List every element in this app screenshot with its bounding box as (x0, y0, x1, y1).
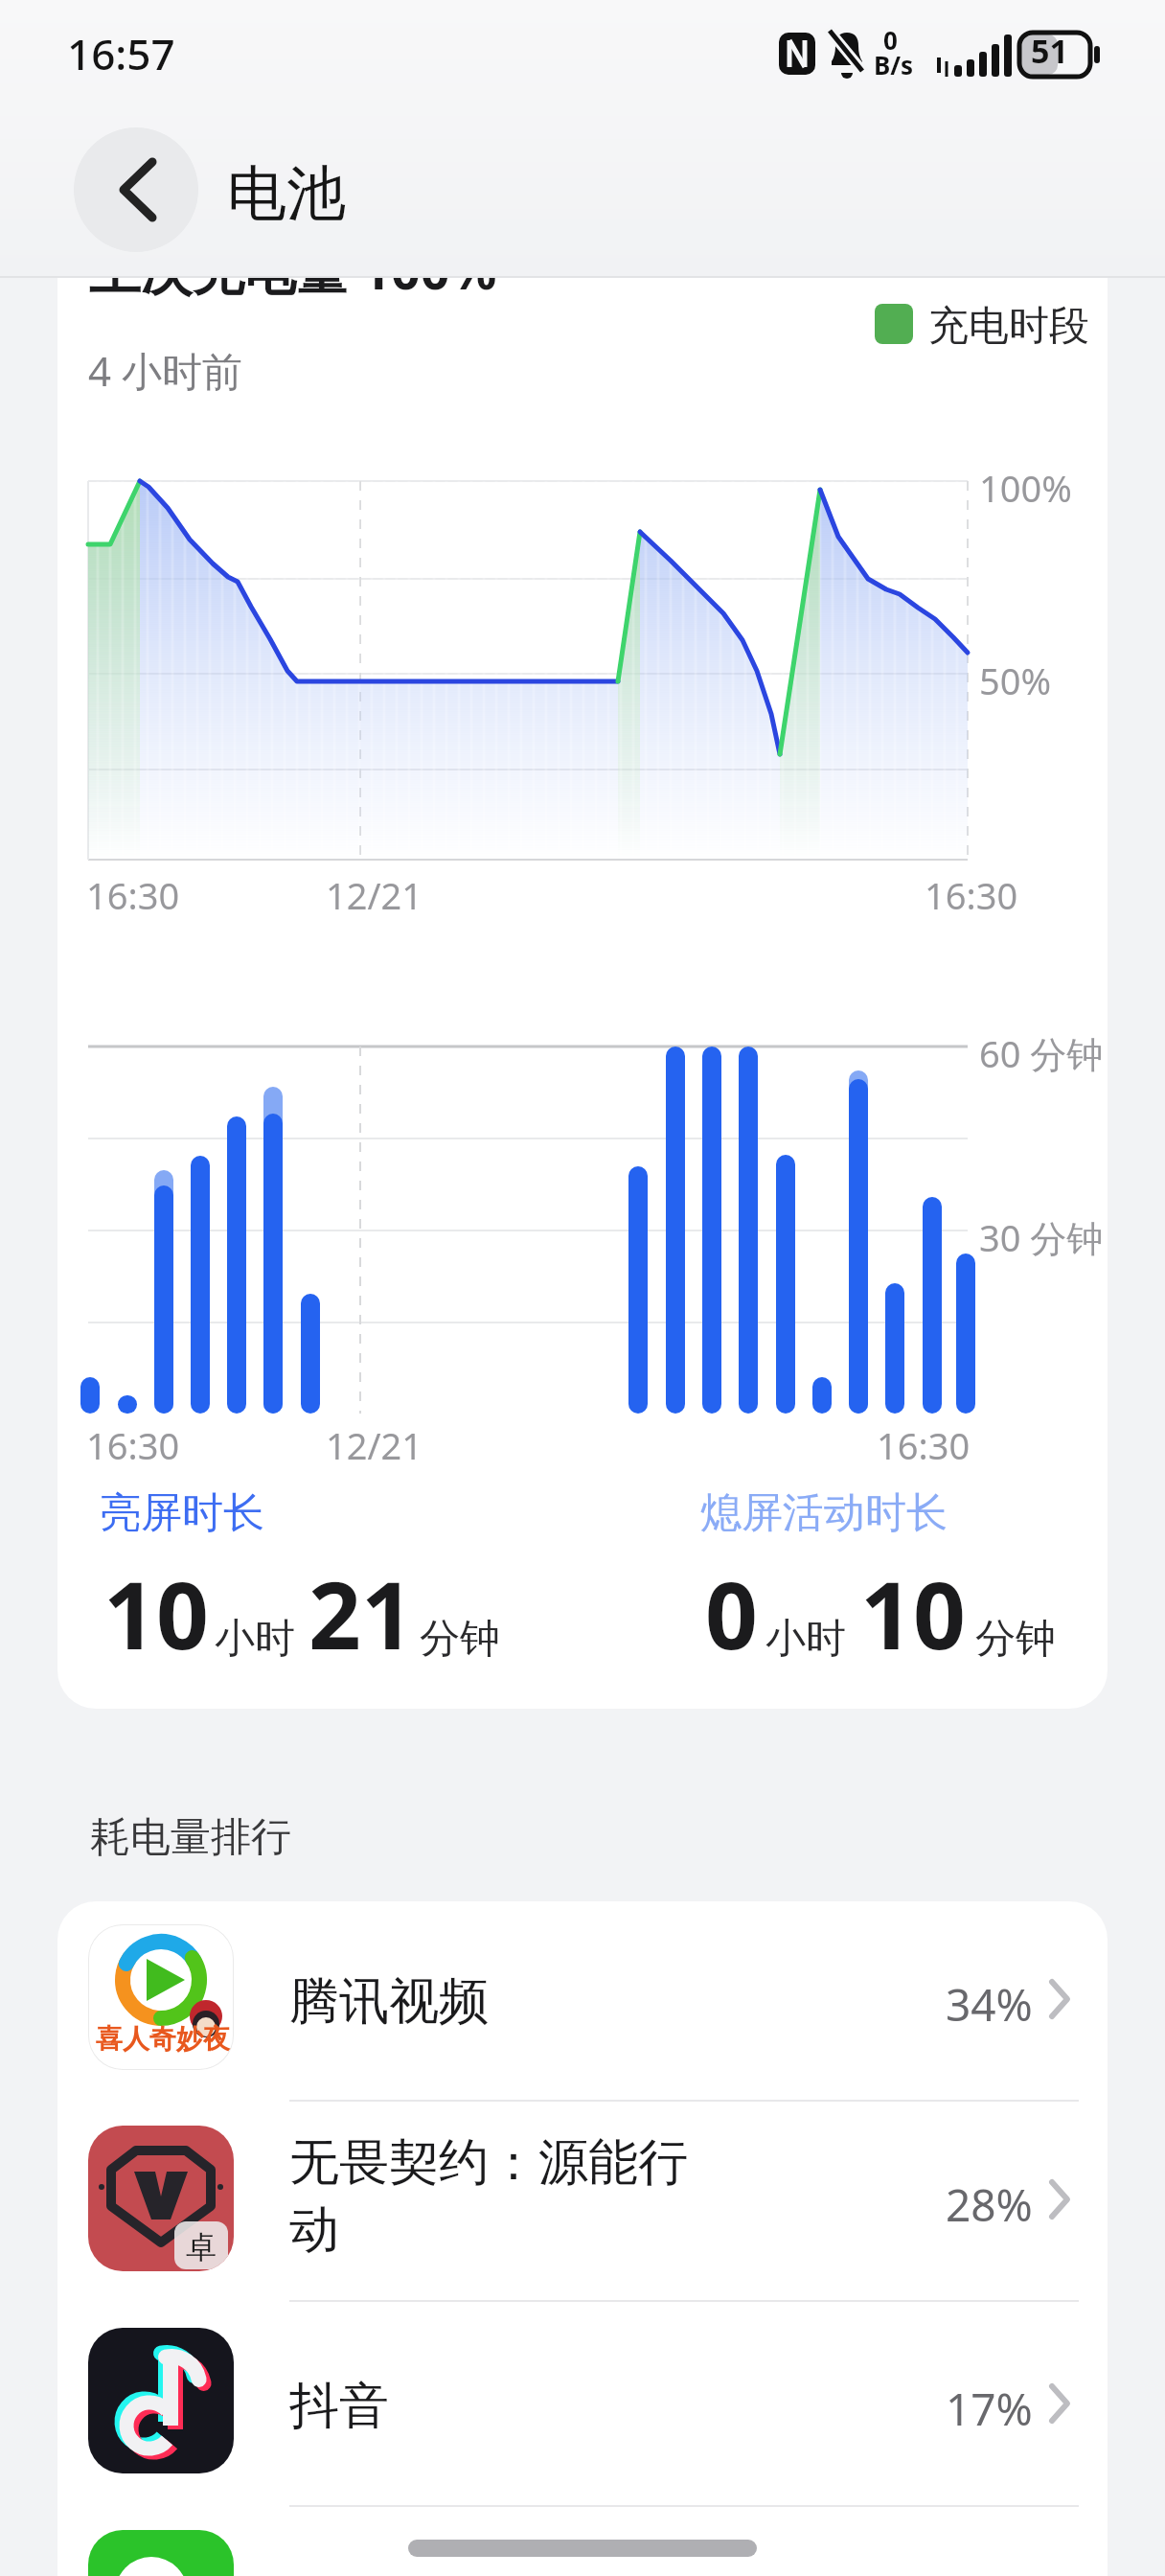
staticText: 30 分钟 (979, 1212, 1104, 1262)
staticText: 17% (946, 2379, 1033, 2439)
staticText: 上次充电量 100% (89, 278, 497, 305)
staticText: 卓 (186, 2228, 217, 2266)
staticText: B/s (874, 48, 914, 81)
button[interactable] (74, 127, 198, 252)
staticText: 10 (860, 1551, 966, 1676)
staticText: 4 小时前 (88, 343, 242, 398)
staticText: 16:30 (86, 1420, 180, 1470)
staticText: 分钟 (420, 1614, 500, 1665)
staticText: 50% (979, 655, 1052, 705)
staticText: 腾讯视频 (289, 1970, 489, 2034)
staticText: 12/21 (326, 1420, 423, 1470)
staticText: 电池 (227, 156, 346, 231)
staticText: 21 (308, 1551, 414, 1676)
staticText: 无畏契约：源能行 (289, 2131, 688, 2195)
staticText: 抖音 (289, 2375, 389, 2438)
staticText: 34% (946, 1974, 1033, 2035)
staticText: 动 (289, 2198, 339, 2262)
staticText: 小时 (215, 1614, 295, 1665)
staticText: 16:30 (925, 870, 1018, 920)
staticText: 分钟 (975, 1614, 1056, 1665)
staticText: 充电时段 (928, 301, 1089, 352)
staticText: 亮屏时长 (100, 1487, 264, 1539)
staticText: 喜人奇妙夜 (96, 2022, 230, 2056)
button[interactable] (57, 2301, 1108, 2505)
staticText: 耗电量排行 (90, 1812, 291, 1863)
staticText: 0 (705, 1551, 758, 1676)
staticText: 16:30 (86, 870, 180, 920)
button[interactable] (57, 2101, 1108, 2301)
staticText: 熄屏活动时长 (700, 1487, 948, 1539)
staticText: 60 分钟 (979, 1028, 1104, 1078)
staticText: 16:30 (877, 1420, 971, 1470)
staticText: 16:57 (67, 25, 175, 82)
staticText: 12/21 (326, 870, 423, 920)
staticText: 10 (103, 1551, 209, 1676)
staticText: 100% (979, 463, 1072, 513)
staticText: 28% (946, 2174, 1033, 2235)
staticText: 0 (883, 23, 898, 57)
button[interactable] (57, 1901, 1108, 2101)
staticText: 小时 (765, 1614, 846, 1665)
staticText: 51 (1031, 29, 1068, 73)
